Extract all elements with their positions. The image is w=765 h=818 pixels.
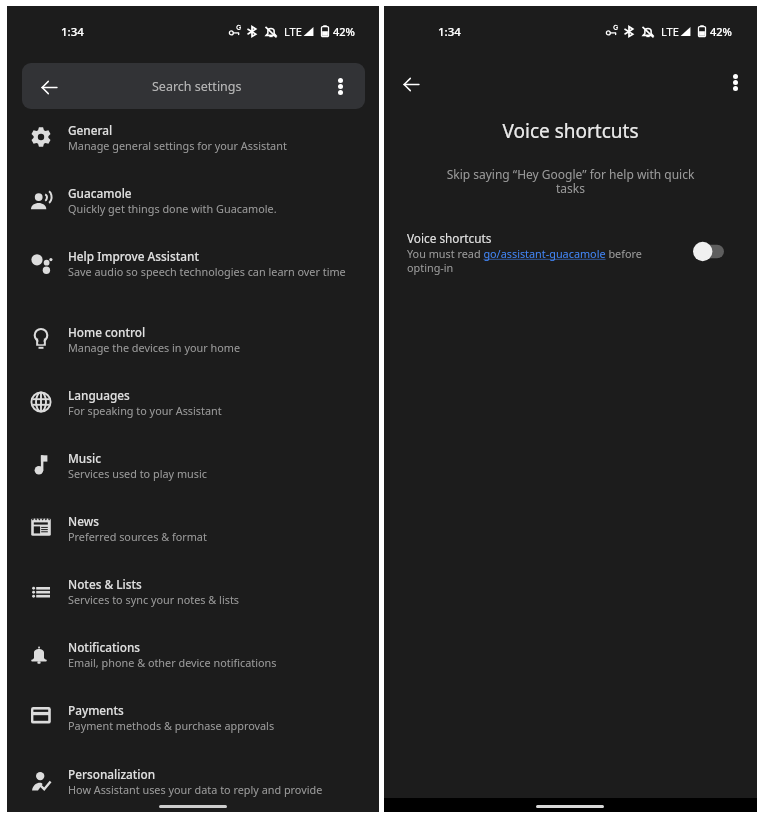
button[interactable]: Back (391, 63, 431, 103)
staticText: Email, phone & other device notification… (68, 655, 277, 670)
button[interactable]: Help Improve Assistant (7, 246, 379, 302)
staticText: LTE (284, 24, 302, 39)
staticText: Services to sync your notes & lists (68, 592, 239, 607)
staticText: How Assistant uses your data to reply an… (68, 782, 323, 797)
staticText: LTE (661, 24, 679, 39)
staticText: Notes & Lists (68, 576, 142, 592)
button[interactable]: Home control (7, 322, 379, 378)
staticText: Preferred sources & format (68, 529, 207, 544)
staticText: Help Improve Assistant (68, 248, 199, 264)
button[interactable]: Notes & Lists (7, 574, 379, 630)
staticText: General (68, 122, 113, 138)
button[interactable]: Voice shortcuts toggle (684, 234, 734, 280)
staticText: Personalization (68, 766, 156, 782)
staticText: Manage general settings for your Assista… (68, 138, 287, 153)
staticText: Payments (68, 702, 124, 718)
staticText: For speaking to your Assistant (68, 403, 222, 418)
staticText: Quickly get things done with Guacamole. (68, 201, 277, 216)
staticText: Payment methods & purchase approvals (68, 718, 275, 733)
button[interactable]: Music (7, 448, 379, 504)
button[interactable]: General (7, 120, 379, 176)
staticText: 42% (710, 24, 732, 39)
staticText: Languages (68, 387, 130, 403)
staticText: Voice shortcuts (407, 230, 492, 246)
staticText: 42% (333, 24, 355, 39)
staticText: Manage the devices in your home (68, 340, 240, 355)
staticText: Notifications (68, 639, 141, 655)
button[interactable]: More options (715, 62, 755, 102)
staticText: Music (68, 450, 101, 466)
button[interactable]: Payments (7, 700, 379, 756)
staticText: Voice shortcuts (384, 118, 757, 144)
staticText: 1:34 (438, 24, 461, 40)
staticText: Guacamole (68, 185, 132, 201)
staticText: Skip saying “Hey Google” for help with q… (443, 166, 698, 197)
button[interactable]: Notifications (7, 637, 379, 693)
button[interactable]: Back (22, 63, 68, 109)
button[interactable]: Back (22, 63, 365, 109)
button[interactable]: Personalization (7, 764, 379, 818)
staticText: News (68, 513, 99, 529)
button[interactable]: Guacamole (7, 183, 379, 239)
button[interactable]: Languages (7, 385, 379, 441)
staticText: You must read go/assistant-guacamole bef… (407, 246, 647, 275)
staticText: 1:34 (61, 24, 84, 40)
button[interactable]: More options (319, 63, 365, 109)
staticText: Home control (68, 324, 146, 340)
staticText: Save audio so speech technologies can le… (68, 264, 346, 279)
staticText: Search settings (152, 78, 242, 95)
button[interactable]: News (7, 511, 379, 567)
staticText: Services used to play music (68, 466, 207, 481)
